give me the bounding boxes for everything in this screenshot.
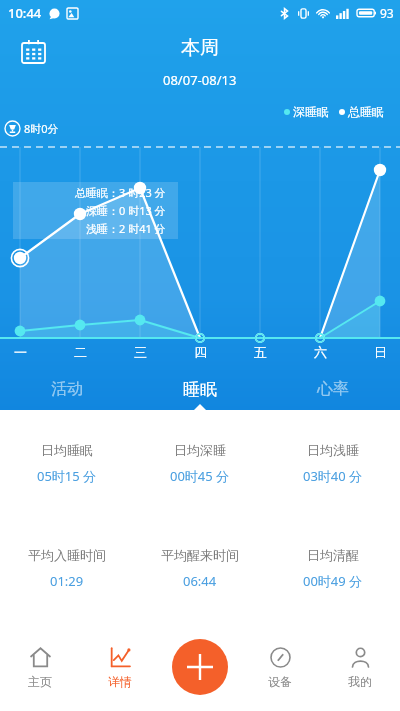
staticText: 我的 — [348, 674, 372, 689]
staticText: 三 — [134, 344, 147, 360]
button[interactable]: Add — [172, 639, 228, 695]
button[interactable]: Calendar — [18, 36, 48, 66]
staticText: 93 — [380, 5, 394, 21]
staticText: 活动 — [51, 379, 83, 399]
button[interactable]: 设备 — [240, 625, 320, 711]
staticText: 08/07-08/13 — [163, 71, 237, 89]
staticText: 一 — [14, 344, 27, 360]
staticText: 10:44 — [8, 4, 42, 22]
staticText: 深睡：0 时13 分 — [86, 203, 166, 218]
staticText: 05时15 分 — [37, 467, 97, 485]
staticText: 日均清醒 — [307, 547, 359, 563]
button[interactable]: 我的 — [320, 625, 400, 711]
staticText: 日 — [374, 344, 387, 360]
staticText: 四 — [194, 344, 207, 360]
staticText: 总睡眠 — [348, 104, 384, 119]
staticText: 二 — [74, 344, 87, 360]
staticText: 心率 — [317, 379, 349, 399]
button[interactable]: 日均深睡 — [135, 442, 265, 485]
staticText: 设备 — [268, 674, 292, 689]
staticText: 8时0分 — [24, 121, 59, 136]
button[interactable]: 睡眠 — [150, 372, 250, 406]
staticText: 六 — [314, 344, 327, 360]
staticText: 00时45 分 — [170, 467, 230, 485]
staticText: 00时49 分 — [303, 572, 363, 590]
staticText: 详情 — [108, 674, 132, 689]
button[interactable]: 日均浅睡 — [268, 442, 398, 485]
button[interactable]: 平均醒来时间 — [135, 547, 265, 590]
staticText: 本周 — [181, 36, 219, 60]
button[interactable]: 活动 — [17, 372, 117, 406]
staticText: 主页 — [28, 674, 52, 689]
staticText: 03时40 分 — [303, 467, 363, 485]
staticText: 01:29 — [50, 572, 84, 590]
staticText: 06:44 — [183, 572, 217, 590]
staticText: 深睡眠 — [293, 104, 329, 119]
staticText: 日均睡眠 — [41, 442, 93, 458]
staticText: 日均深睡 — [174, 442, 226, 458]
button[interactable]: 日均睡眠 — [2, 442, 132, 485]
staticText: 日均浅睡 — [307, 442, 359, 458]
staticText: 平均入睡时间 — [28, 547, 106, 563]
button[interactable]: 平均入睡时间 — [2, 547, 132, 590]
staticText: 总睡眠：3 时23 分 — [75, 185, 166, 200]
button[interactable]: 心率 — [283, 372, 383, 406]
staticText: 五 — [254, 344, 267, 360]
button[interactable]: 详情 — [80, 625, 160, 711]
staticText: 浅睡：2 时41 分 — [86, 221, 166, 236]
button[interactable]: 日均清醒 — [268, 547, 398, 590]
staticText: 睡眠 — [183, 379, 217, 400]
staticText: 平均醒来时间 — [161, 547, 239, 563]
button[interactable]: 主页 — [0, 625, 80, 711]
